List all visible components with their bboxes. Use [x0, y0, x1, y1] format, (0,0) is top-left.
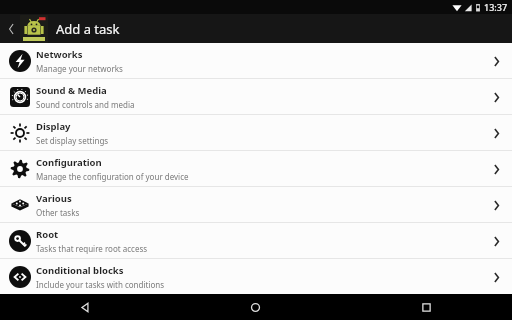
button[interactable]: Conditional blocks — [0, 259, 512, 294]
staticText: Various — [36, 192, 72, 205]
staticText: Display — [36, 120, 71, 133]
staticText: Add a task — [56, 20, 120, 38]
button[interactable]: Various — [0, 187, 512, 222]
staticText: Include your tasks with conditions — [36, 279, 165, 290]
button[interactable]: Recent apps — [341, 294, 512, 320]
staticText: Other tasks — [36, 207, 80, 218]
staticText: Sound & Media — [36, 84, 107, 97]
staticText: Networks — [36, 48, 83, 61]
button[interactable]: Back — [0, 294, 170, 320]
staticText: Tasks that require root access — [36, 243, 148, 254]
staticText: Configuration — [36, 156, 102, 169]
staticText: Set display settings — [36, 135, 109, 146]
button[interactable]: Display — [0, 115, 512, 150]
button[interactable]: Sound & Media — [0, 79, 512, 114]
button[interactable]: Navigate up — [4, 14, 18, 43]
button[interactable]: Configuration — [0, 151, 512, 186]
staticText: Sound controls and media — [36, 99, 135, 110]
staticText: Manage the configuration of your device — [36, 171, 189, 182]
staticText: Manage your networks — [36, 63, 123, 74]
button[interactable]: Home — [170, 294, 341, 320]
staticText: Root — [36, 228, 59, 241]
staticText: 13:37 — [484, 1, 508, 13]
button[interactable]: Networks — [0, 43, 512, 78]
staticText: Conditional blocks — [36, 264, 124, 277]
button[interactable]: Root — [0, 223, 512, 258]
